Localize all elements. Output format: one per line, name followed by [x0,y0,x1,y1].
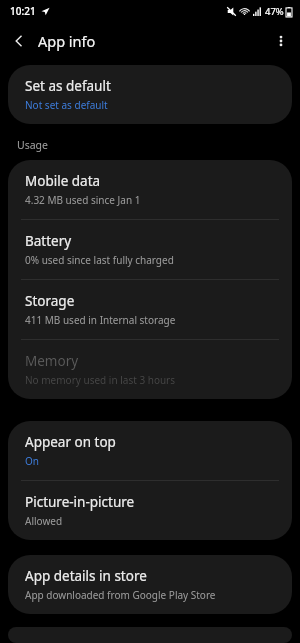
button[interactable]: Set as default [8,65,292,124]
button[interactable]: App details in store [8,555,292,614]
staticText: 47% [265,5,284,18]
staticText: 4.32 MB used since Jan 1 [25,193,141,207]
button[interactable]: Picture-in-picture [8,481,292,540]
button[interactable]: More options [262,22,300,60]
staticText: App downloaded from Google Play Store [25,588,216,602]
staticText: On [25,454,39,468]
staticText: Allowed [25,514,63,528]
staticText: Mobile data [25,172,101,190]
button[interactable]: Mobile data [8,160,292,219]
staticText: App info [38,31,96,51]
button[interactable]: Appear on top [8,421,292,480]
button[interactable]: Memory [8,340,292,399]
button[interactable]: Battery [8,220,292,279]
button[interactable]: Back [0,22,38,60]
staticText: Picture-in-picture [25,493,135,511]
staticText: Appear on top [25,433,116,451]
staticText: Memory [25,352,79,370]
staticText: No memory used in last 3 hours [25,373,176,387]
staticText: 411 MB used in Internal storage [25,313,176,327]
staticText: Set as default [25,77,111,95]
staticText: 0% used since last fully charged [25,253,174,267]
staticText: App details in store [25,567,147,585]
staticText: Not set as default [25,98,108,112]
button[interactable]: Storage [8,280,292,339]
staticText: Storage [25,292,75,310]
staticText: Battery [25,232,72,250]
staticText: Usage [17,138,48,152]
staticText: 10:21 [10,4,36,18]
